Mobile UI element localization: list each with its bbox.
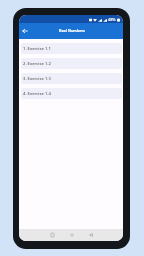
- staticText: 2. Exercise 1.2: [23, 61, 51, 67]
- button[interactable]: 3. Exercise 1.3: [21, 73, 122, 84]
- staticText: 4. Exercise 1.4: [23, 91, 51, 97]
- button[interactable]: Back: [81, 229, 100, 241]
- button[interactable]: 1. Exercise 1.1: [21, 43, 122, 54]
- button[interactable]: 4. Exercise 1.4: [21, 88, 122, 99]
- staticText: 3. Exercise 1.3: [23, 76, 51, 82]
- staticText: Real Numbers: [59, 28, 85, 33]
- staticText: 48%: [108, 17, 116, 22]
- button[interactable]: Home: [62, 229, 81, 241]
- button[interactable]: Recents: [43, 229, 62, 241]
- staticText: 1. Exercise 1.1: [23, 46, 51, 52]
- button[interactable]: Back: [19, 23, 31, 39]
- button[interactable]: 2. Exercise 1.2: [21, 58, 122, 69]
